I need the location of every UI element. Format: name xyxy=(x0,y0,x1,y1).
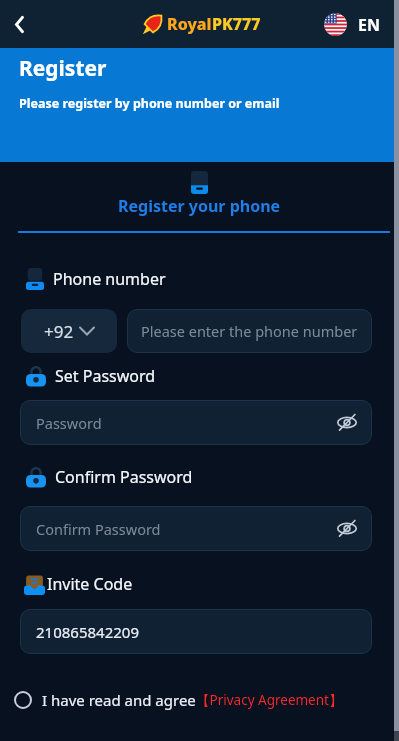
button[interactable]: Confirm Password xyxy=(20,506,372,551)
button[interactable]: EN xyxy=(324,13,380,36)
staticText: Phone number xyxy=(53,268,166,290)
staticText: Confirm Password xyxy=(55,466,193,488)
staticText: Confirm Password xyxy=(36,519,161,539)
staticText: Register your phone xyxy=(118,195,281,217)
button[interactable]: I have read and agree xyxy=(14,690,343,710)
staticText: Register xyxy=(19,54,107,83)
staticText: 210865842209 xyxy=(36,622,139,642)
staticText: Password xyxy=(36,413,102,433)
staticText: 【Privacy Agreement】 xyxy=(196,691,343,709)
button[interactable]: +92 xyxy=(21,309,117,353)
button[interactable]: Password xyxy=(20,400,372,445)
staticText: Please register by phone number or email xyxy=(19,95,280,112)
staticText: EN xyxy=(358,14,380,36)
staticText: Invite Code xyxy=(47,573,133,595)
staticText: PK777 xyxy=(212,13,261,35)
button[interactable]: Register your phone xyxy=(118,171,281,217)
staticText: +92 xyxy=(44,320,74,343)
staticText: I have read and agree xyxy=(42,690,196,710)
button[interactable]: Please enter the phone number xyxy=(127,309,372,353)
button[interactable] xyxy=(3,7,37,41)
staticText: Royal xyxy=(167,13,212,35)
staticText: Set Password xyxy=(55,365,156,387)
staticText: Please enter the phone number xyxy=(141,321,358,341)
button[interactable]: 210865842209 xyxy=(20,609,372,654)
